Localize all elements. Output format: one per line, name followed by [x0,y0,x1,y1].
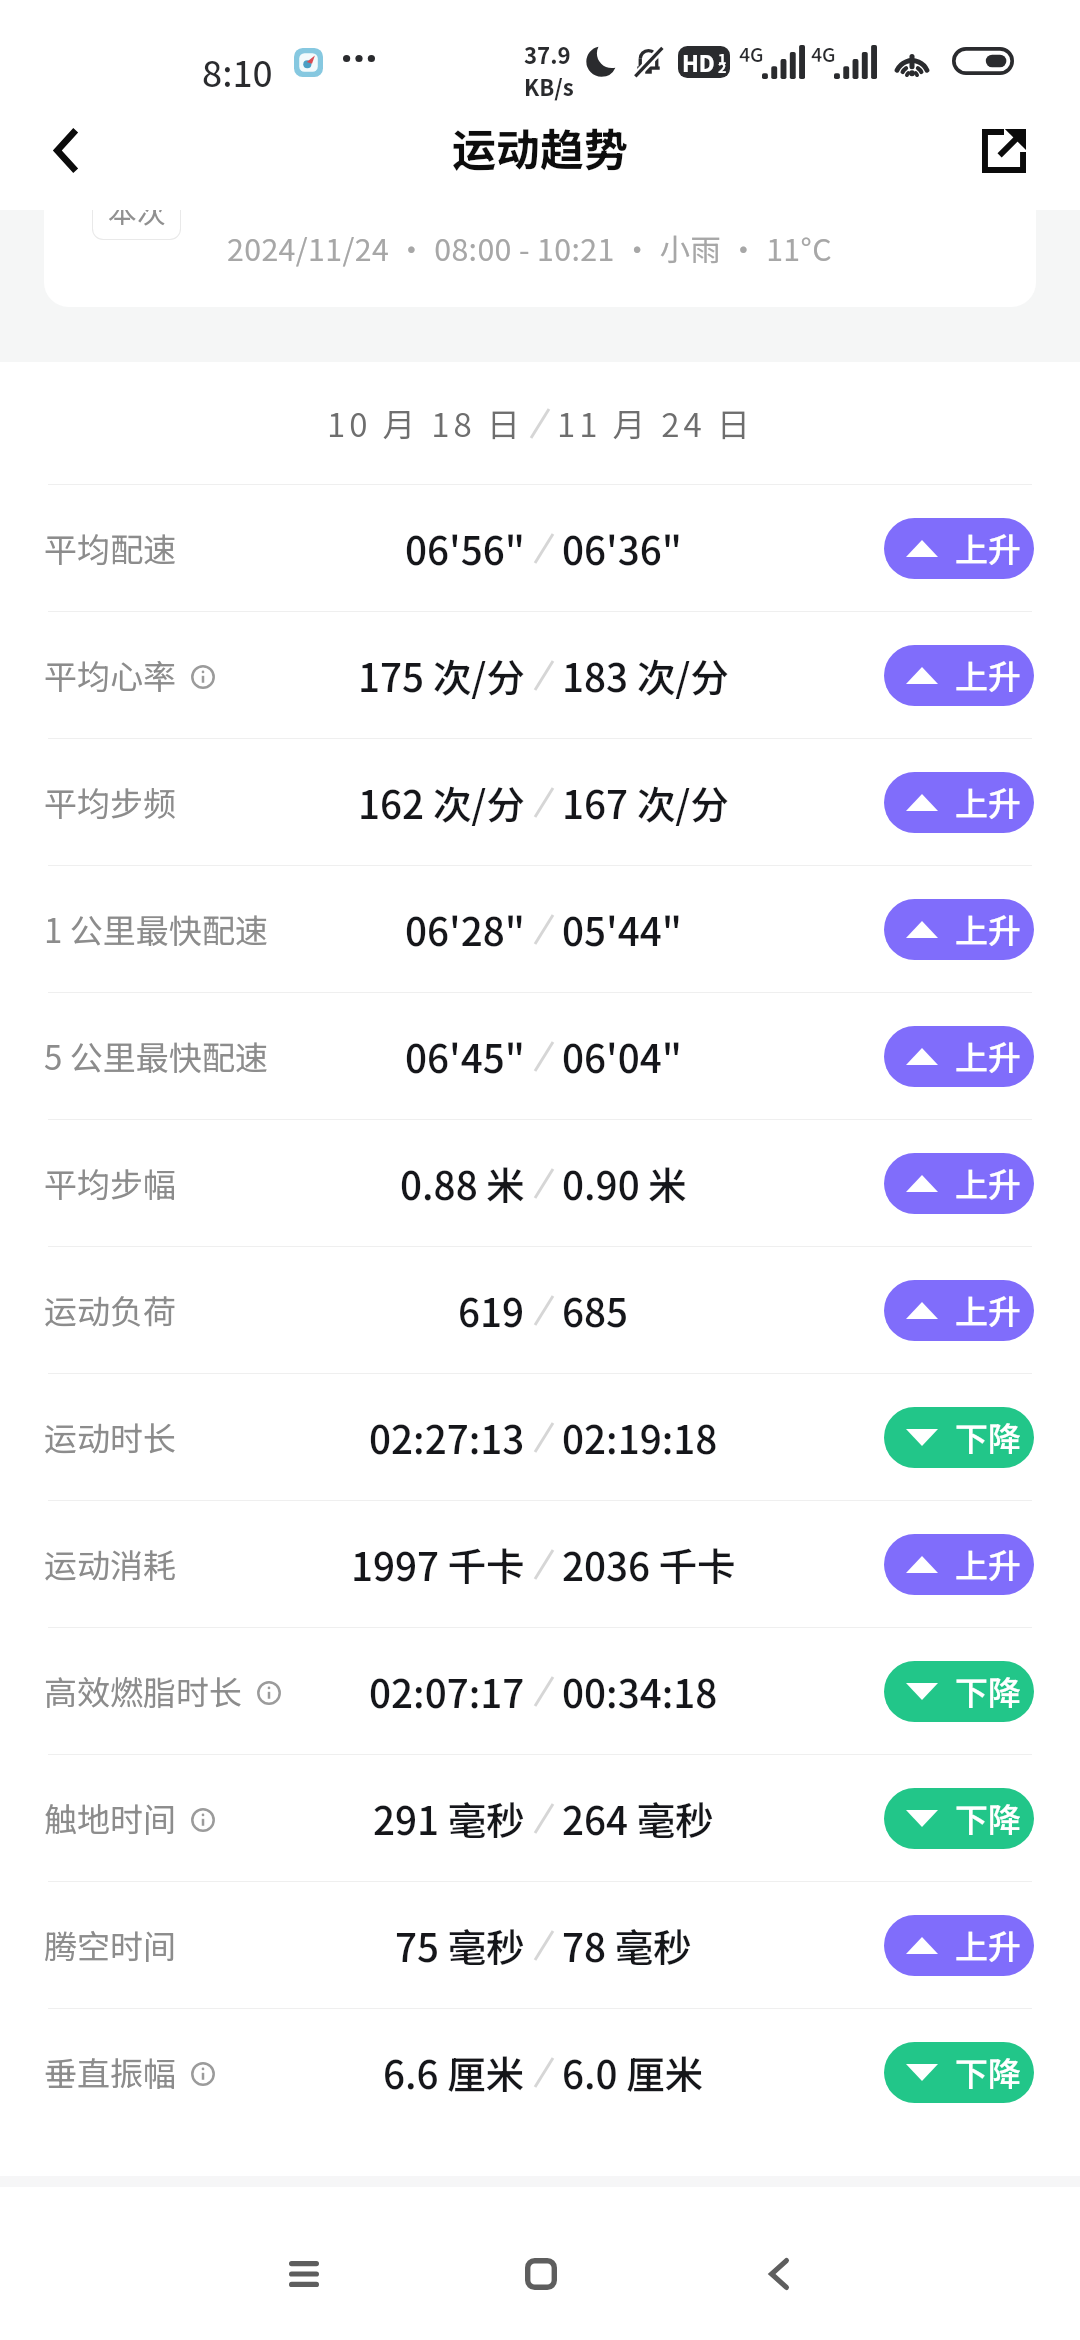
staticText: 619 [458,1282,525,1338]
staticText: 78 毫秒 [562,1917,692,1973]
button[interactable]: 上升 [884,899,1034,960]
staticText: 上升 [955,905,1021,953]
button[interactable]: 高效燃脂时长 [0,1628,1080,1754]
staticText: 上升 [955,1540,1021,1588]
staticText: 8:10 [202,46,273,98]
staticText: 183 次/分 [562,647,729,703]
staticText: 平均配速 [44,524,176,572]
staticText: 下降 [955,1667,1021,1715]
staticText: 175 次/分 [358,647,525,703]
button[interactable]: Back [14,98,119,203]
staticText: 平均步幅 [44,1159,176,1207]
staticText: 上升 [955,651,1021,699]
staticText: 垂直振幅 [44,2048,176,2096]
staticText: 0.90 米 [562,1155,687,1211]
staticText: 下降 [955,1413,1021,1461]
staticText: 触地时间 [44,1794,176,1842]
staticText: 291 毫秒 [373,1790,525,1846]
staticText: 05'44" [562,901,682,957]
staticText: 上升 [955,1032,1021,1080]
staticText: 运动时长 [44,1413,176,1461]
button[interactable]: 下降 [884,1788,1034,1849]
staticText: 上升 [955,1921,1021,1969]
button[interactable]: 下降 [884,2042,1034,2103]
button[interactable]: 1 公里最快配速 [0,866,1080,992]
staticText: 02:27:13 [369,1409,525,1465]
staticText: 4G [811,40,836,68]
staticText: 06'45" [405,1028,525,1084]
staticText: 37.9 [524,38,571,70]
staticText: 2 [718,56,727,77]
button[interactable]: 上升 [884,1280,1034,1341]
staticText: 1997 千卡 [351,1536,525,1592]
staticText: 6.6 厘米 [383,2044,525,2100]
staticText: 4G [739,40,764,68]
staticText: 运动消耗 [44,1540,176,1588]
staticText: 2024/11/24 · 08:00 - 10:21 · 小雨 · 11°C [227,226,832,270]
staticText: 腾空时间 [44,1921,176,1969]
button[interactable]: Recent apps [249,2219,359,2329]
staticText: 5 公里最快配速 [44,1032,268,1080]
staticText: 0.88 米 [400,1155,525,1211]
staticText: 上升 [955,524,1021,572]
staticText: 167 次/分 [562,774,729,830]
staticText: 1 [718,47,727,68]
staticText: 11 月 24 日 [557,399,754,447]
staticText: 02:07:17 [369,1663,525,1719]
button[interactable]: 下降 [884,1661,1034,1722]
button[interactable]: 上升 [884,1026,1034,1087]
staticText: HD [682,46,715,78]
button[interactable]: 下降 [884,1407,1034,1468]
button[interactable]: 腾空时间 [0,1882,1080,2008]
staticText: 06'28" [405,901,525,957]
button[interactable]: 本次 [44,210,1036,307]
button[interactable]: Home [486,2219,596,2329]
button[interactable]: 上升 [884,645,1034,706]
staticText: 高效燃脂时长 [44,1667,242,1715]
button[interactable]: 平均步幅 [0,1120,1080,1246]
button[interactable]: 5 公里最快配速 [0,993,1080,1119]
staticText: 06'56" [405,520,525,576]
button[interactable]: 上升 [884,1534,1034,1595]
staticText: 162 次/分 [358,774,525,830]
staticText: 1 公里最快配速 [44,905,268,953]
button[interactable]: 垂直振幅 [0,2009,1080,2135]
staticText: 运动趋势 [452,115,628,179]
button[interactable]: 上升 [884,1153,1034,1214]
staticText: 下降 [955,2048,1021,2096]
button[interactable]: 平均配速 [0,485,1080,611]
staticText: 运动负荷 [44,1286,176,1334]
staticText: 6.0 厘米 [562,2044,704,2100]
staticText: 06'04" [562,1028,682,1084]
staticText: 下降 [955,1794,1021,1842]
button[interactable]: Back [724,2219,834,2329]
button[interactable]: 平均步频 [0,739,1080,865]
staticText: 10 月 18 日 [327,399,524,447]
button[interactable]: 运动消耗 [0,1501,1080,1627]
staticText: 上升 [955,1159,1021,1207]
button[interactable]: 平均心率 [0,612,1080,738]
button[interactable]: 上升 [884,1915,1034,1976]
staticText: 2036 千卡 [562,1536,736,1592]
staticText: 上升 [955,778,1021,826]
staticText: KB/s [524,70,574,102]
staticText: 上升 [955,1286,1021,1334]
staticText: 本次 [108,210,166,232]
button[interactable]: 上升 [884,518,1034,579]
staticText: 平均步频 [44,778,176,826]
staticText: 264 毫秒 [562,1790,714,1846]
staticText: 平均心率 [44,651,176,699]
button[interactable]: 运动负荷 [0,1247,1080,1373]
staticText: 02:19:18 [562,1409,718,1465]
button[interactable]: 运动时长 [0,1374,1080,1500]
button[interactable]: 触地时间 [0,1755,1080,1881]
staticText: 75 毫秒 [395,1917,525,1973]
staticText: 685 [562,1282,629,1338]
button[interactable]: 上升 [884,772,1034,833]
staticText: 06'36" [562,520,682,576]
staticText: 00:34:18 [562,1663,718,1719]
button[interactable]: Share [951,98,1056,203]
